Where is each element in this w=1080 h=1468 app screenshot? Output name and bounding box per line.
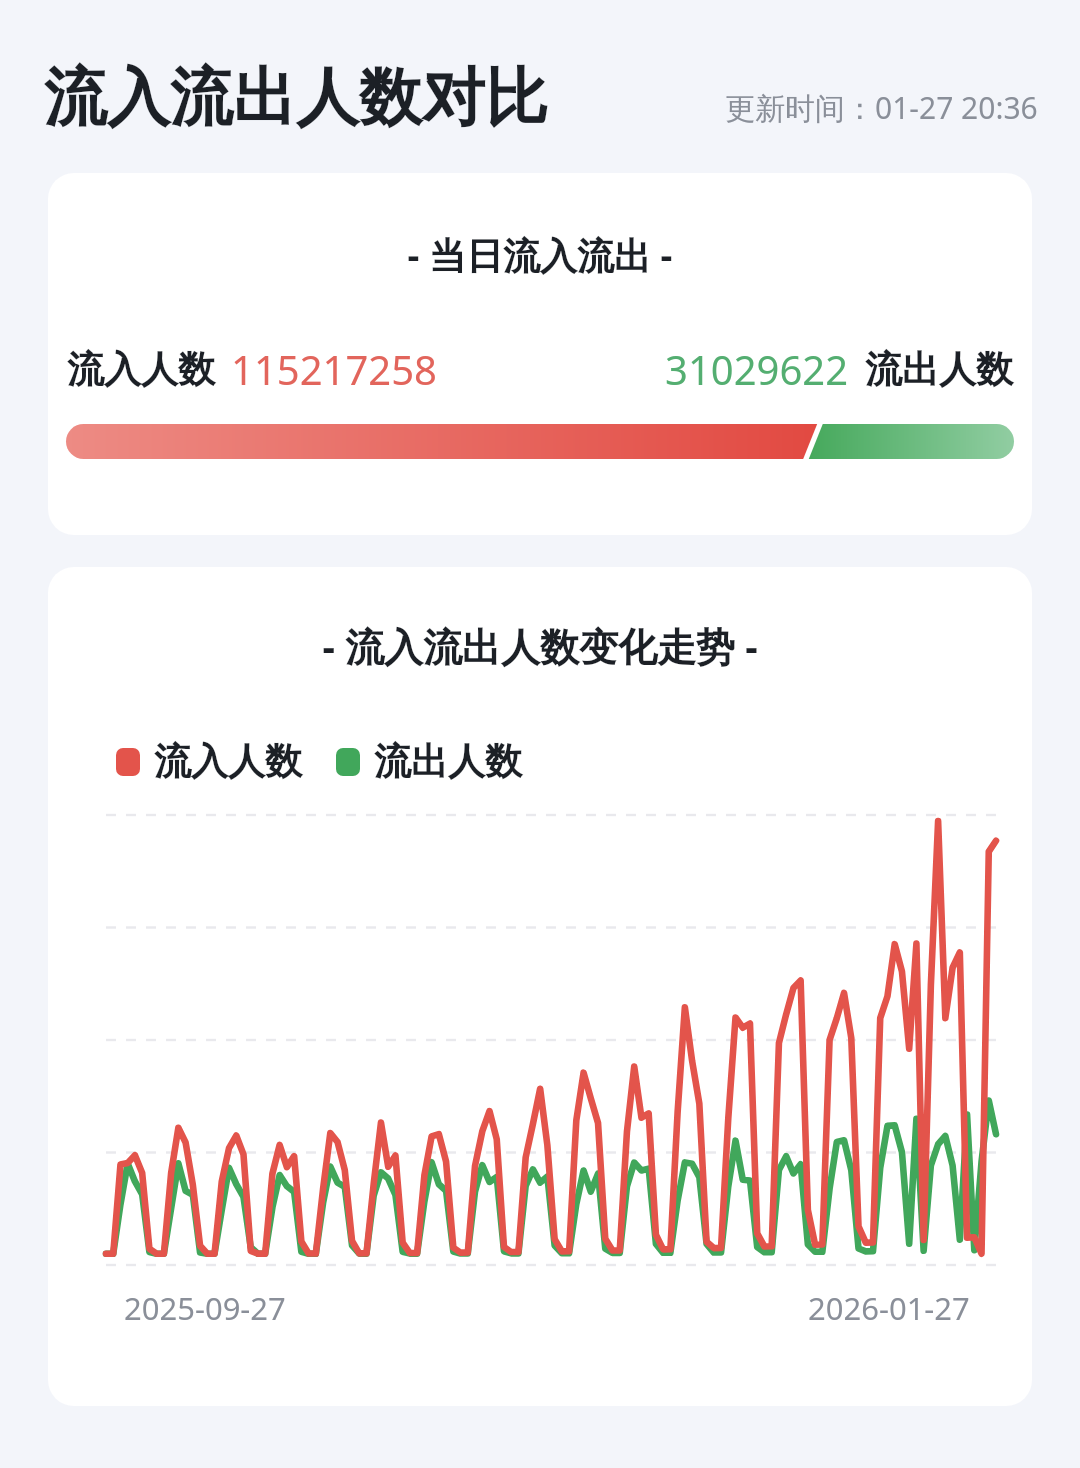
button[interactable]: 流出人数 xyxy=(336,738,522,785)
staticText: 更新时间：01-27 20:36 xyxy=(725,87,1038,128)
staticText: - 当日流入流出 - xyxy=(48,229,1032,280)
staticText: - 流入流出人数变化走势 - xyxy=(48,619,1032,672)
staticText: 流出人数 xyxy=(374,738,522,785)
button[interactable]: 流入人数 xyxy=(116,738,302,785)
staticText: 115217258 xyxy=(231,342,437,396)
button[interactable]: - 流入流出人数变化走势 - xyxy=(48,567,1032,1406)
staticText: 2026-01-27 xyxy=(808,1287,970,1329)
staticText: 31029622 xyxy=(665,342,849,396)
staticText: 流入人数 xyxy=(154,738,302,785)
staticText: 流出人数 xyxy=(865,346,1013,393)
staticText: 2025-09-27 xyxy=(124,1287,286,1329)
staticText: 流入流出人数对比 xyxy=(44,58,548,137)
staticText: 流入人数 xyxy=(67,346,215,393)
button[interactable]: - 当日流入流出 - xyxy=(48,173,1032,535)
